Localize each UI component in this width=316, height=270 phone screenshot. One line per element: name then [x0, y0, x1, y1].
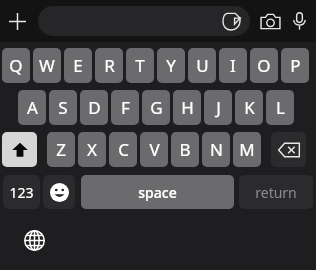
staticText: L	[276, 96, 285, 119]
staticText: J	[216, 96, 221, 119]
button[interactable]	[38, 6, 250, 36]
staticText: 123	[9, 183, 34, 202]
staticText: Q	[9, 54, 23, 77]
button[interactable]: K	[235, 90, 263, 125]
staticText: K	[244, 96, 255, 119]
button[interactable]: G	[142, 90, 170, 125]
button[interactable]: Change keyboard language	[22, 228, 46, 252]
button[interactable]: L	[266, 90, 294, 125]
button[interactable]: U	[188, 48, 216, 83]
staticText: E	[73, 54, 83, 77]
button[interactable]: space	[81, 175, 234, 209]
staticText: O	[257, 54, 271, 77]
button[interactable]: Q	[2, 48, 30, 83]
button[interactable]: Stickers	[219, 9, 243, 33]
button[interactable]: Delete	[271, 132, 306, 167]
button[interactable]: E	[64, 48, 92, 83]
staticText: I	[230, 54, 236, 77]
button[interactable]: H	[173, 90, 201, 125]
button[interactable]: R	[95, 48, 123, 83]
button[interactable]: M	[233, 132, 261, 167]
button[interactable]: X	[78, 132, 106, 167]
staticText: return	[255, 183, 297, 202]
staticText: D	[88, 96, 101, 119]
button[interactable]: Camera	[258, 9, 283, 34]
staticText: F	[121, 96, 130, 119]
staticText: W	[39, 54, 55, 77]
staticText: R	[104, 54, 115, 77]
staticText: space	[138, 183, 177, 202]
staticText: A	[27, 96, 38, 119]
button[interactable]: O	[250, 48, 278, 83]
staticText: P	[290, 54, 301, 77]
staticText: B	[179, 138, 191, 161]
button[interactable]: Emoji	[43, 175, 75, 209]
button[interactable]: Y	[157, 48, 185, 83]
button[interactable]: N	[202, 132, 230, 167]
staticText: Z	[56, 138, 66, 161]
button[interactable]: Z	[47, 132, 75, 167]
button[interactable]: Add attachment	[4, 8, 30, 34]
button[interactable]: Shift	[2, 132, 37, 167]
button[interactable]: P	[281, 48, 309, 83]
button[interactable]: return	[239, 175, 313, 209]
staticText: T	[135, 54, 145, 77]
button[interactable]: V	[140, 132, 168, 167]
staticText: U	[196, 54, 209, 77]
staticText: Y	[166, 54, 176, 77]
staticText: V	[149, 138, 160, 161]
button[interactable]: J	[204, 90, 232, 125]
staticText: X	[87, 138, 97, 161]
button[interactable]: D	[80, 90, 108, 125]
button[interactable]: F	[111, 90, 139, 125]
staticText: M	[239, 138, 255, 161]
button[interactable]: A	[18, 90, 46, 125]
staticText: S	[58, 96, 68, 119]
button[interactable]: B	[171, 132, 199, 167]
button[interactable]: I	[219, 48, 247, 83]
button[interactable]: 123	[3, 175, 40, 209]
button[interactable]: T	[126, 48, 154, 83]
button[interactable]: S	[49, 90, 77, 125]
staticText: C	[118, 138, 129, 161]
staticText: G	[150, 96, 163, 119]
button[interactable]: Voice input	[287, 9, 311, 33]
staticText: N	[210, 138, 223, 161]
staticText: H	[181, 96, 194, 119]
button[interactable]: C	[109, 132, 137, 167]
button[interactable]: W	[33, 48, 61, 83]
